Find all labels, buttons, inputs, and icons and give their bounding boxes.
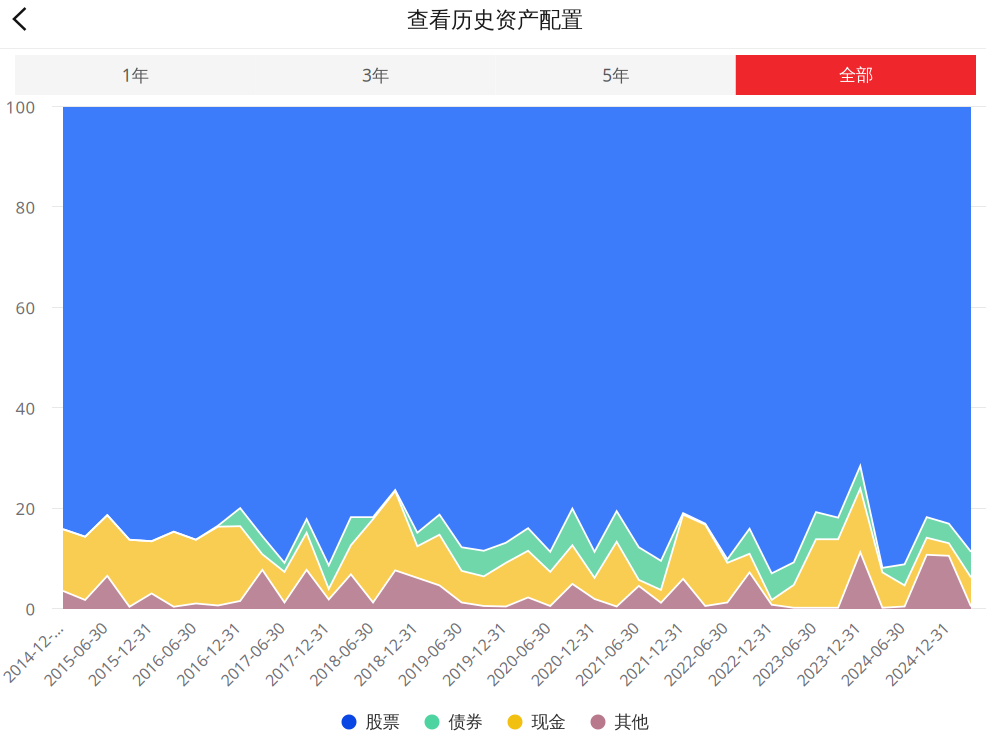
- staticText: 现金: [531, 711, 565, 733]
- button[interactable]: 5年: [495, 55, 736, 95]
- staticText: 股票: [365, 711, 399, 733]
- staticText: 全部: [839, 64, 873, 86]
- button[interactable]: 现金: [507, 711, 565, 733]
- button[interactable]: 返回: [0, 0, 40, 41]
- staticText: 2015-06-30: [22, 614, 104, 636]
- button[interactable]: 债券: [424, 711, 482, 733]
- staticText: 3年: [362, 63, 389, 87]
- staticText: 2024-12-31: [864, 614, 946, 636]
- button[interactable]: 全部: [736, 55, 976, 95]
- staticText: 2016-12-31: [155, 614, 237, 636]
- staticText: 1年: [122, 63, 149, 87]
- staticText: 2023-06-30: [731, 614, 813, 636]
- button[interactable]: 3年: [255, 55, 495, 95]
- staticText: 债券: [448, 711, 482, 733]
- staticText: 2018-12-31: [332, 614, 414, 636]
- staticText: 60: [15, 296, 35, 319]
- button[interactable]: 1年: [15, 55, 255, 95]
- staticText: 20: [15, 497, 35, 520]
- staticText: 2021-12-31: [598, 614, 680, 636]
- staticText: 2016-06-30: [111, 614, 193, 636]
- staticText: 2018-06-30: [288, 614, 370, 636]
- staticText: 2020-12-31: [509, 614, 591, 636]
- staticText: 2022-12-31: [687, 614, 769, 636]
- staticText: 40: [15, 397, 35, 419]
- staticText: 5年: [602, 63, 629, 87]
- staticText: 2020-06-30: [465, 614, 547, 636]
- staticText: 2022-06-30: [642, 614, 724, 636]
- staticText: 2023-12-31: [775, 614, 857, 636]
- staticText: 查看历史资产配置: [407, 6, 583, 34]
- staticText: 2014-12-…: [0, 614, 60, 636]
- button[interactable]: 其他: [590, 711, 648, 733]
- staticText: 2017-06-30: [199, 614, 281, 636]
- staticText: 2017-12-31: [244, 614, 326, 636]
- staticText: 2015-12-31: [67, 614, 149, 636]
- staticText: 2019-06-30: [377, 614, 459, 636]
- staticText: 100: [5, 96, 35, 118]
- staticText: 2019-12-31: [421, 614, 503, 636]
- staticText: 0: [25, 598, 35, 620]
- staticText: 80: [15, 196, 35, 219]
- staticText: 其他: [614, 711, 648, 733]
- staticText: 2024-06-30: [820, 614, 902, 636]
- button[interactable]: 股票: [341, 711, 399, 733]
- staticText: 2021-06-30: [554, 614, 636, 636]
